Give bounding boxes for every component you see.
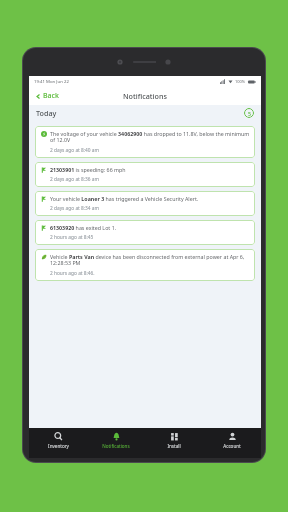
staticText: 5	[248, 110, 251, 117]
staticText: Vehicle Parts Van device has been discon…	[50, 253, 250, 267]
button[interactable]: 61303920 has exited Lot 1.	[35, 220, 255, 245]
staticText: 2 days ago at 8:36 am	[50, 176, 100, 183]
staticText: 2 hours ago at 8:46.	[50, 270, 95, 277]
staticText: 2 days ago at 8:34 am	[50, 205, 100, 212]
button[interactable]: Back	[33, 89, 62, 103]
staticText: 21303901 is speeding: 66 mph	[50, 166, 126, 173]
staticText: 61303920 has exited Lot 1.	[50, 224, 117, 231]
staticText: Notifications	[102, 443, 130, 449]
staticText: Today	[36, 108, 57, 118]
staticText: 100%	[235, 79, 246, 84]
button[interactable]: Install	[145, 428, 203, 458]
button[interactable]: Inventory	[29, 428, 87, 458]
staticText: Account	[223, 443, 241, 449]
button[interactable]: Vehicle Parts Van device has been discon…	[35, 249, 255, 281]
button[interactable]: Notifications	[87, 428, 145, 458]
staticText: Back	[43, 91, 59, 101]
staticText: Inventory	[48, 443, 69, 449]
staticText: The voltage of your vehicle 34062900 has…	[50, 130, 250, 144]
button[interactable]: Account	[203, 428, 261, 458]
staticText: 19:41 Mon Jun 22	[34, 78, 69, 84]
staticText: 2 hours ago at 8:45	[50, 234, 94, 241]
button[interactable]: Your vehicle Loaner 3 has triggered a Ve…	[35, 191, 255, 216]
button[interactable]: Notification count 5	[244, 108, 254, 118]
button[interactable]: 21303901 is speeding: 66 mph	[35, 162, 255, 187]
staticText: Notifications	[123, 91, 167, 101]
button[interactable]: The voltage of your vehicle 34062900 has…	[35, 126, 255, 158]
staticText: 2 days ago at 8:40 am	[50, 147, 100, 154]
staticText: Install	[167, 443, 181, 449]
staticText: Your vehicle Loaner 3 has triggered a Ve…	[50, 195, 199, 202]
